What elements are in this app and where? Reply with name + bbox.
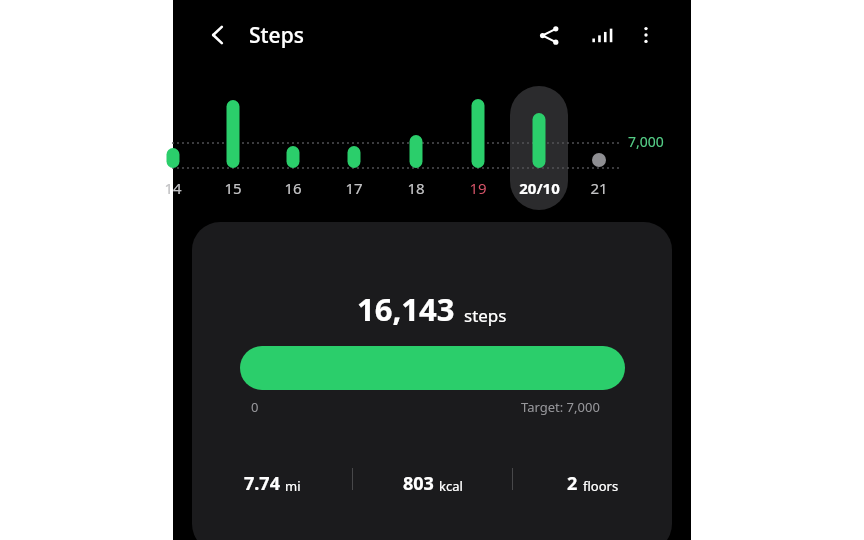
button[interactable]: Back xyxy=(197,14,239,56)
staticText: 17 xyxy=(345,178,363,198)
staticText: 2 xyxy=(567,471,578,496)
staticText: 14 xyxy=(164,178,182,198)
staticText: 7,000 xyxy=(628,132,664,151)
staticText: 21 xyxy=(590,178,608,198)
button[interactable]: 18 xyxy=(396,174,436,202)
button[interactable]: 2 xyxy=(513,462,672,496)
staticText: 16,143 xyxy=(357,288,455,330)
staticText: mi xyxy=(285,477,301,495)
staticText: Steps xyxy=(249,21,304,50)
button[interactable]: 15 xyxy=(213,174,253,202)
staticText: Target: 7,000 xyxy=(521,398,600,416)
staticText: 20/10 xyxy=(519,178,560,198)
button[interactable]: 21 xyxy=(579,174,619,202)
button[interactable]: 19 xyxy=(458,174,498,202)
button[interactable]: Share xyxy=(528,14,570,56)
button[interactable]: 16 xyxy=(273,174,313,202)
button[interactable]: 7.74 xyxy=(192,462,352,496)
staticText: 7.74 xyxy=(244,471,280,496)
button[interactable]: Chart xyxy=(578,14,620,56)
staticText: 19 xyxy=(469,178,487,198)
button[interactable]: 803 xyxy=(353,462,512,496)
staticText: 18 xyxy=(407,178,425,198)
staticText: floors xyxy=(583,477,619,495)
button[interactable]: 20/10 xyxy=(509,174,569,202)
button[interactable]: 17 xyxy=(334,174,374,202)
staticText: steps xyxy=(464,304,507,327)
staticText: 0 xyxy=(251,398,259,416)
button[interactable]: 14 xyxy=(153,174,193,202)
staticText: kcal xyxy=(439,477,463,495)
staticText: 15 xyxy=(224,178,242,198)
staticText: 803 xyxy=(403,471,434,496)
button[interactable]: 16,143 xyxy=(192,222,672,540)
staticText: 16 xyxy=(284,178,302,198)
button[interactable]: More options xyxy=(625,14,667,56)
